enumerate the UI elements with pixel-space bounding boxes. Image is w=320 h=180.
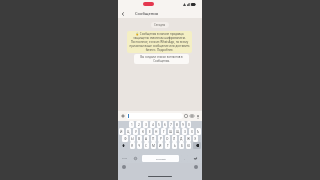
button[interactable]: 4 — [150, 121, 155, 128]
staticText: З — [184, 130, 186, 134]
button[interactable]: У — [133, 128, 138, 135]
staticText: Т — [167, 144, 169, 148]
staticText: Я — [131, 144, 134, 148]
button[interactable]: С — [144, 142, 149, 149]
button[interactable]: Р — [158, 135, 163, 142]
staticText: И — [159, 144, 162, 148]
button[interactable]: З — [182, 128, 187, 135]
button[interactable]: Я — [130, 142, 135, 149]
staticText: А — [145, 137, 148, 141]
button[interactable]: 6 — [163, 121, 167, 128]
button[interactable]: 5 — [157, 121, 161, 128]
staticText: Ж — [187, 137, 190, 141]
button[interactable]: Voice message — [195, 114, 200, 119]
button[interactable]: Backspace — [193, 142, 201, 149]
staticText: Русский — [156, 157, 166, 160]
staticText: Сообщения — [135, 11, 159, 16]
button[interactable]: И — [158, 142, 163, 149]
staticText: 2 — [138, 123, 140, 127]
button[interactable]: Вы создали список контактов в Сообщения. — [134, 54, 189, 64]
button[interactable]: Н — [154, 128, 159, 135]
button[interactable]: Ю — [186, 142, 191, 149]
staticText: М — [152, 144, 155, 148]
button[interactable]: 3 — [143, 121, 148, 128]
button[interactable]: К — [140, 128, 145, 135]
staticText: Ц — [127, 130, 130, 134]
staticText: Е — [149, 130, 151, 134]
staticText: П — [152, 137, 155, 141]
button[interactable]: Г — [161, 128, 166, 135]
button[interactable]: Change keyboard — [122, 165, 126, 169]
staticText: 1 — [131, 123, 133, 127]
button[interactable]: Б — [179, 142, 184, 149]
staticText: К — [142, 130, 144, 134]
staticText: Ю — [187, 144, 191, 148]
button[interactable]: А — [144, 135, 149, 142]
staticText: Б — [181, 144, 183, 148]
button[interactable]: Д — [179, 135, 184, 142]
button[interactable]: Attach — [120, 113, 126, 119]
staticText: 🔒 Сообщения в канале продавца защищены с… — [129, 32, 190, 52]
staticText: 0 — [188, 123, 190, 127]
staticText: Ч — [138, 144, 141, 148]
button[interactable]: 🔒 Сообщения в канале продавца защищены с… — [127, 31, 192, 53]
staticText: 7 — [170, 123, 172, 127]
staticText: С — [145, 144, 148, 148]
staticText: В — [138, 137, 141, 141]
staticText: У — [135, 130, 137, 134]
button[interactable]: Е — [147, 128, 152, 135]
button[interactable]: Ч — [137, 142, 142, 149]
staticText: . — [184, 157, 185, 161]
button[interactable]: 0 — [187, 121, 191, 128]
staticText: Р — [160, 137, 162, 141]
staticText: 5 — [158, 123, 160, 127]
button[interactable]: Voice input — [194, 165, 198, 169]
staticText: Э — [194, 137, 197, 141]
button[interactable]: Й — [119, 128, 124, 135]
button[interactable] — [126, 113, 183, 119]
button[interactable]: Back — [119, 10, 127, 18]
staticText: Й — [120, 130, 123, 134]
button[interactable]: Ь — [172, 142, 177, 149]
staticText: Щ — [176, 130, 180, 134]
button[interactable]: П — [151, 135, 156, 142]
button[interactable]: 2 — [136, 121, 141, 128]
staticText: ?123 — [122, 157, 127, 160]
button[interactable]: 8 — [175, 121, 179, 128]
button[interactable]: Ы — [130, 135, 135, 142]
button[interactable]: Camera — [189, 113, 195, 119]
staticText: 9 — [182, 123, 184, 127]
button[interactable]: О — [165, 135, 170, 142]
button[interactable]: Э — [193, 135, 198, 142]
button[interactable]: 1 — [129, 121, 134, 128]
staticText: 4 — [152, 123, 154, 127]
button[interactable]: Щ — [175, 128, 180, 135]
button[interactable]: 9 — [181, 121, 185, 128]
button[interactable]: Л — [172, 135, 177, 142]
staticText: Ъ — [197, 130, 200, 134]
staticText: Сегодня — [154, 23, 166, 27]
button[interactable]: Emoji — [183, 113, 189, 119]
staticText: Х — [191, 130, 193, 134]
button[interactable]: М — [151, 142, 156, 149]
button[interactable]: Ф — [122, 135, 128, 142]
staticText: Н — [155, 130, 158, 134]
button[interactable]: Ж — [186, 135, 191, 142]
staticText: Вы создали список контактов в Сообщения. — [136, 55, 187, 63]
button[interactable]: Space — [142, 155, 179, 162]
button[interactable]: Shift — [119, 142, 128, 149]
staticText: Л — [173, 137, 176, 141]
button[interactable]: Ц — [126, 128, 131, 135]
staticText: О — [166, 137, 169, 141]
button[interactable]: Emoji — [131, 155, 140, 162]
button[interactable]: Ъ — [196, 128, 201, 135]
button[interactable]: Ш — [168, 128, 173, 135]
button[interactable]: В — [137, 135, 142, 142]
button[interactable]: Enter — [190, 155, 201, 162]
button[interactable]: Х — [189, 128, 194, 135]
staticText: Ф — [124, 137, 127, 141]
button[interactable]: Numbers — [119, 155, 129, 162]
button[interactable]: Т — [165, 142, 170, 149]
button[interactable]: 7 — [169, 121, 173, 128]
